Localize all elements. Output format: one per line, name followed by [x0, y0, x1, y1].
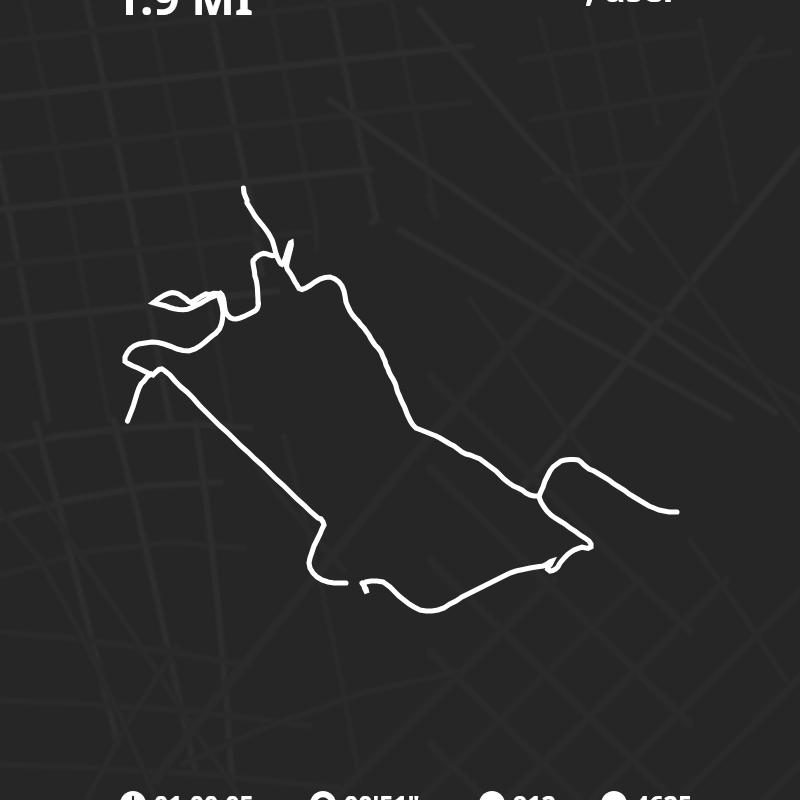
staticText: 1.9 MI [114, 0, 253, 29]
button[interactable]: , user [585, 0, 679, 12]
button[interactable]: Duration [120, 787, 254, 800]
button[interactable]: Calories [479, 787, 556, 800]
staticText: , user [585, 0, 679, 12]
staticText: 912 [513, 787, 556, 800]
button[interactable]: Steps [601, 787, 693, 800]
button[interactable]: Pace [310, 787, 420, 800]
staticText: 4625 [635, 787, 693, 800]
staticText: 01:00:05 [154, 787, 254, 800]
button[interactable]: 1.9 MI [114, 0, 253, 29]
staticText: 00'51" [344, 787, 420, 800]
